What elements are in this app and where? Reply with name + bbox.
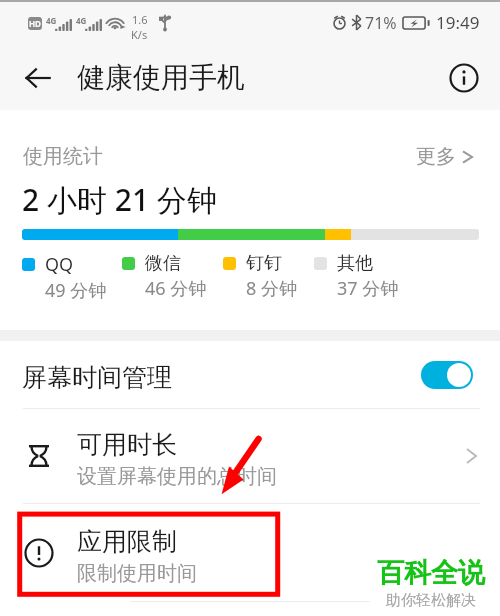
staticText: 71%	[365, 12, 397, 34]
staticText: 1.6	[132, 12, 148, 27]
staticText: 37 分钟	[337, 276, 399, 301]
staticText: 46 分钟	[145, 276, 207, 301]
staticText: K/s	[131, 27, 148, 42]
staticText: 4G	[76, 15, 87, 26]
button[interactable]: 屏幕时间管理 开关	[421, 361, 473, 389]
staticText: 4G	[46, 15, 57, 26]
staticText: 其他	[337, 252, 373, 275]
staticText: HD	[29, 18, 41, 29]
button[interactable]: 应用限制	[0, 504, 500, 601]
staticText: 应用限制	[77, 526, 177, 557]
staticText: QQ	[45, 252, 74, 277]
staticText: 19:49	[436, 11, 480, 34]
staticText: 使用统计	[23, 144, 103, 169]
staticText: 助你轻松解决	[386, 591, 476, 610]
staticText: 2 小时 21 分钟	[22, 179, 217, 220]
staticText: 设置屏幕使用的总时间	[77, 464, 277, 489]
staticText: 49 分钟	[45, 278, 107, 303]
button[interactable]: 更多	[416, 144, 474, 169]
button[interactable]: 屏幕时间管理	[0, 341, 500, 408]
staticText: 健康使用手机	[77, 60, 245, 95]
staticText: 百科全说	[377, 556, 485, 590]
button[interactable]: Back	[16, 56, 60, 100]
button[interactable]: 可用时长	[0, 409, 500, 503]
staticText: 微信	[145, 252, 181, 275]
staticText: 可用时长	[77, 429, 177, 460]
staticText: 屏幕时间管理	[22, 362, 172, 393]
staticText: 8 分钟	[246, 276, 297, 301]
staticText: 钉钉	[246, 252, 282, 275]
staticText: 限制使用时间	[77, 561, 197, 586]
button[interactable]: Info	[442, 56, 486, 100]
staticText: 更多	[416, 144, 456, 169]
